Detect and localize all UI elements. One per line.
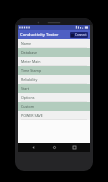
staticText: Name	[21, 41, 32, 46]
staticText: Options	[21, 95, 35, 100]
button[interactable]: Back	[29, 143, 38, 152]
button[interactable]: Database	[18, 48, 90, 57]
staticText: Database	[21, 50, 37, 55]
staticText: Conductivity Tester	[20, 32, 70, 38]
staticText: POWER SAVE	[21, 113, 43, 118]
button[interactable]: Recent apps	[70, 143, 79, 152]
button[interactable]: Options	[18, 93, 90, 102]
staticText: Meter Main	[21, 59, 41, 64]
button[interactable]: Meter Main	[18, 57, 90, 66]
staticText: Start	[21, 86, 30, 91]
staticText: Connect	[75, 33, 87, 37]
staticText: Reliability	[21, 77, 38, 82]
button[interactable]: Start	[18, 84, 90, 93]
button[interactable]: Name	[18, 39, 90, 48]
button[interactable]: Reliability	[18, 75, 90, 84]
button[interactable]: Connect	[70, 32, 88, 38]
button[interactable]: Custom	[18, 102, 90, 111]
button[interactable]: POWER SAVE	[18, 111, 90, 120]
button[interactable]: Time Stamp	[18, 66, 90, 75]
button[interactable]: Home	[50, 143, 59, 152]
staticText: Custom	[21, 104, 35, 109]
staticText: Time Stamp	[21, 68, 42, 73]
